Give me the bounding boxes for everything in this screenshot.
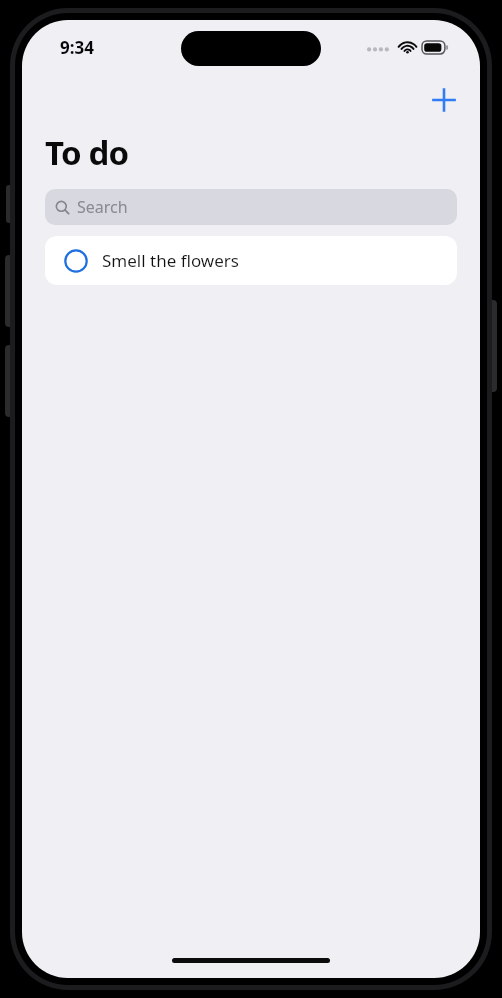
button[interactable]: Mark complete (62, 247, 90, 275)
staticText: Smell the flowers (102, 249, 239, 272)
staticText: To do (45, 130, 129, 175)
staticText: 9:34 (60, 36, 94, 59)
button[interactable]: Mark complete (45, 236, 457, 285)
button[interactable]: Add task (422, 78, 466, 122)
staticText: Search (77, 196, 128, 218)
button[interactable]: Search (45, 189, 457, 225)
